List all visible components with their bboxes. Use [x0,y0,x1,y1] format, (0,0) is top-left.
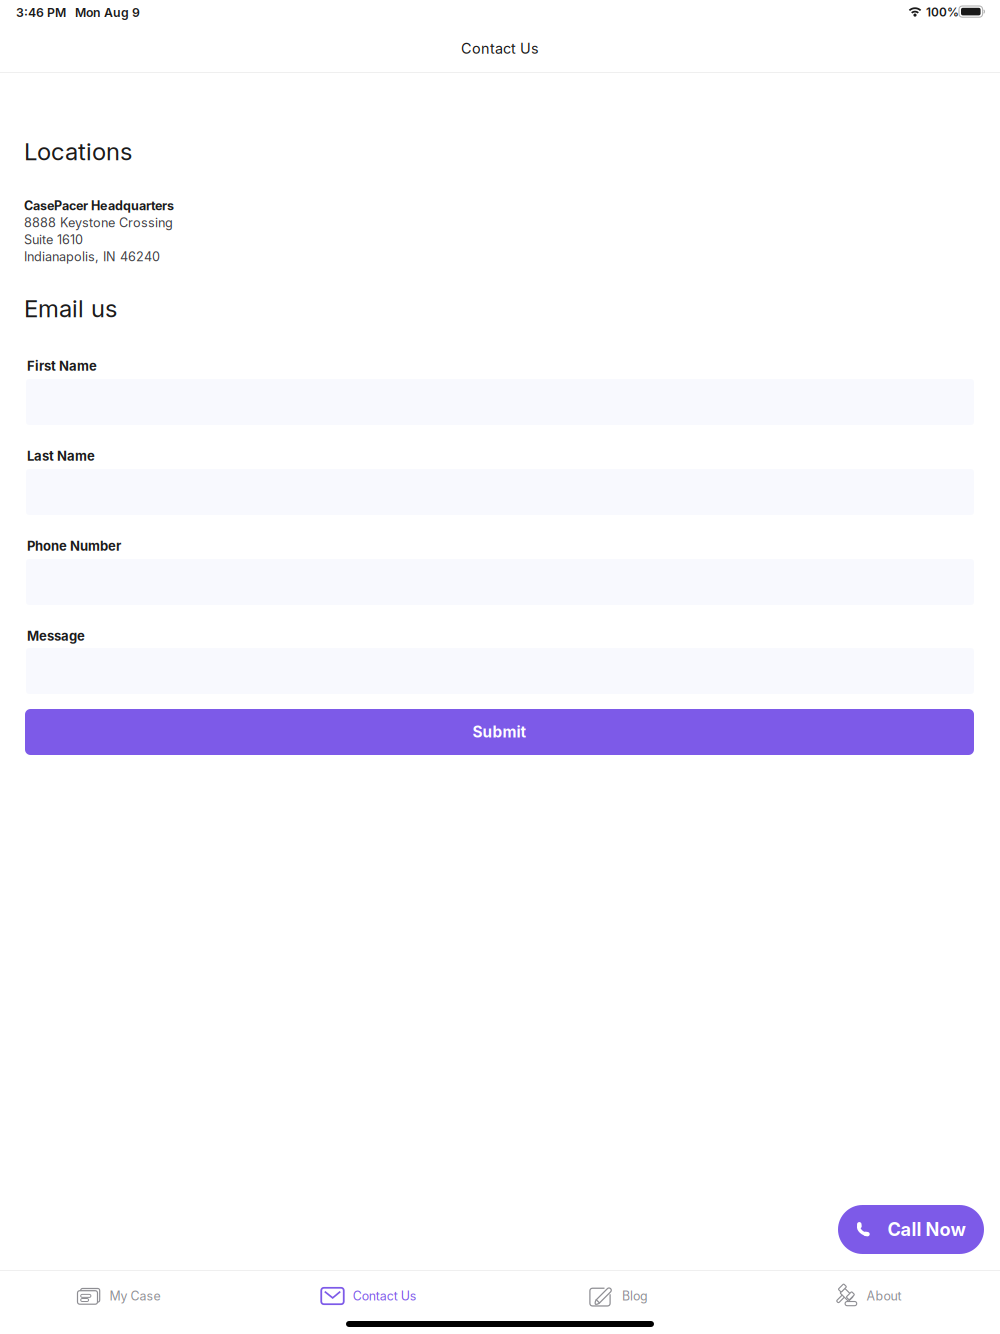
staticText: Contact Us [353,1288,417,1303]
staticText: Indianapolis, IN 46240 [24,249,160,264]
staticText: Blog [622,1288,648,1303]
staticText: 8888 Keystone Crossing [24,215,173,230]
staticText: Contact Us [461,40,539,57]
staticText: Last Name [27,448,95,464]
staticText: 3:46 PM [16,5,66,20]
button[interactable]: Call Now [838,1205,984,1254]
button[interactable]: Blog [500,1272,737,1320]
button[interactable]: Submit [25,709,974,755]
staticText: Suite 1610 [24,232,83,247]
staticText: Locations [24,137,132,166]
button[interactable]: Contact Us [238,1272,500,1320]
staticText: Phone Number [27,538,121,554]
staticText: My Case [109,1288,160,1303]
staticText: Call Now [887,1218,965,1240]
staticText: Email us [24,294,117,323]
staticText: CasePacer Headquarters [24,198,174,213]
staticText: Mon Aug 9 [75,5,140,20]
staticText: About [866,1288,901,1303]
staticText: Submit [472,723,526,741]
staticText: First Name [27,358,97,374]
button[interactable]: About [737,1272,1000,1320]
button[interactable]: My Case [0,1272,238,1320]
staticText: 100% [926,5,959,19]
staticText: Message [27,628,85,644]
